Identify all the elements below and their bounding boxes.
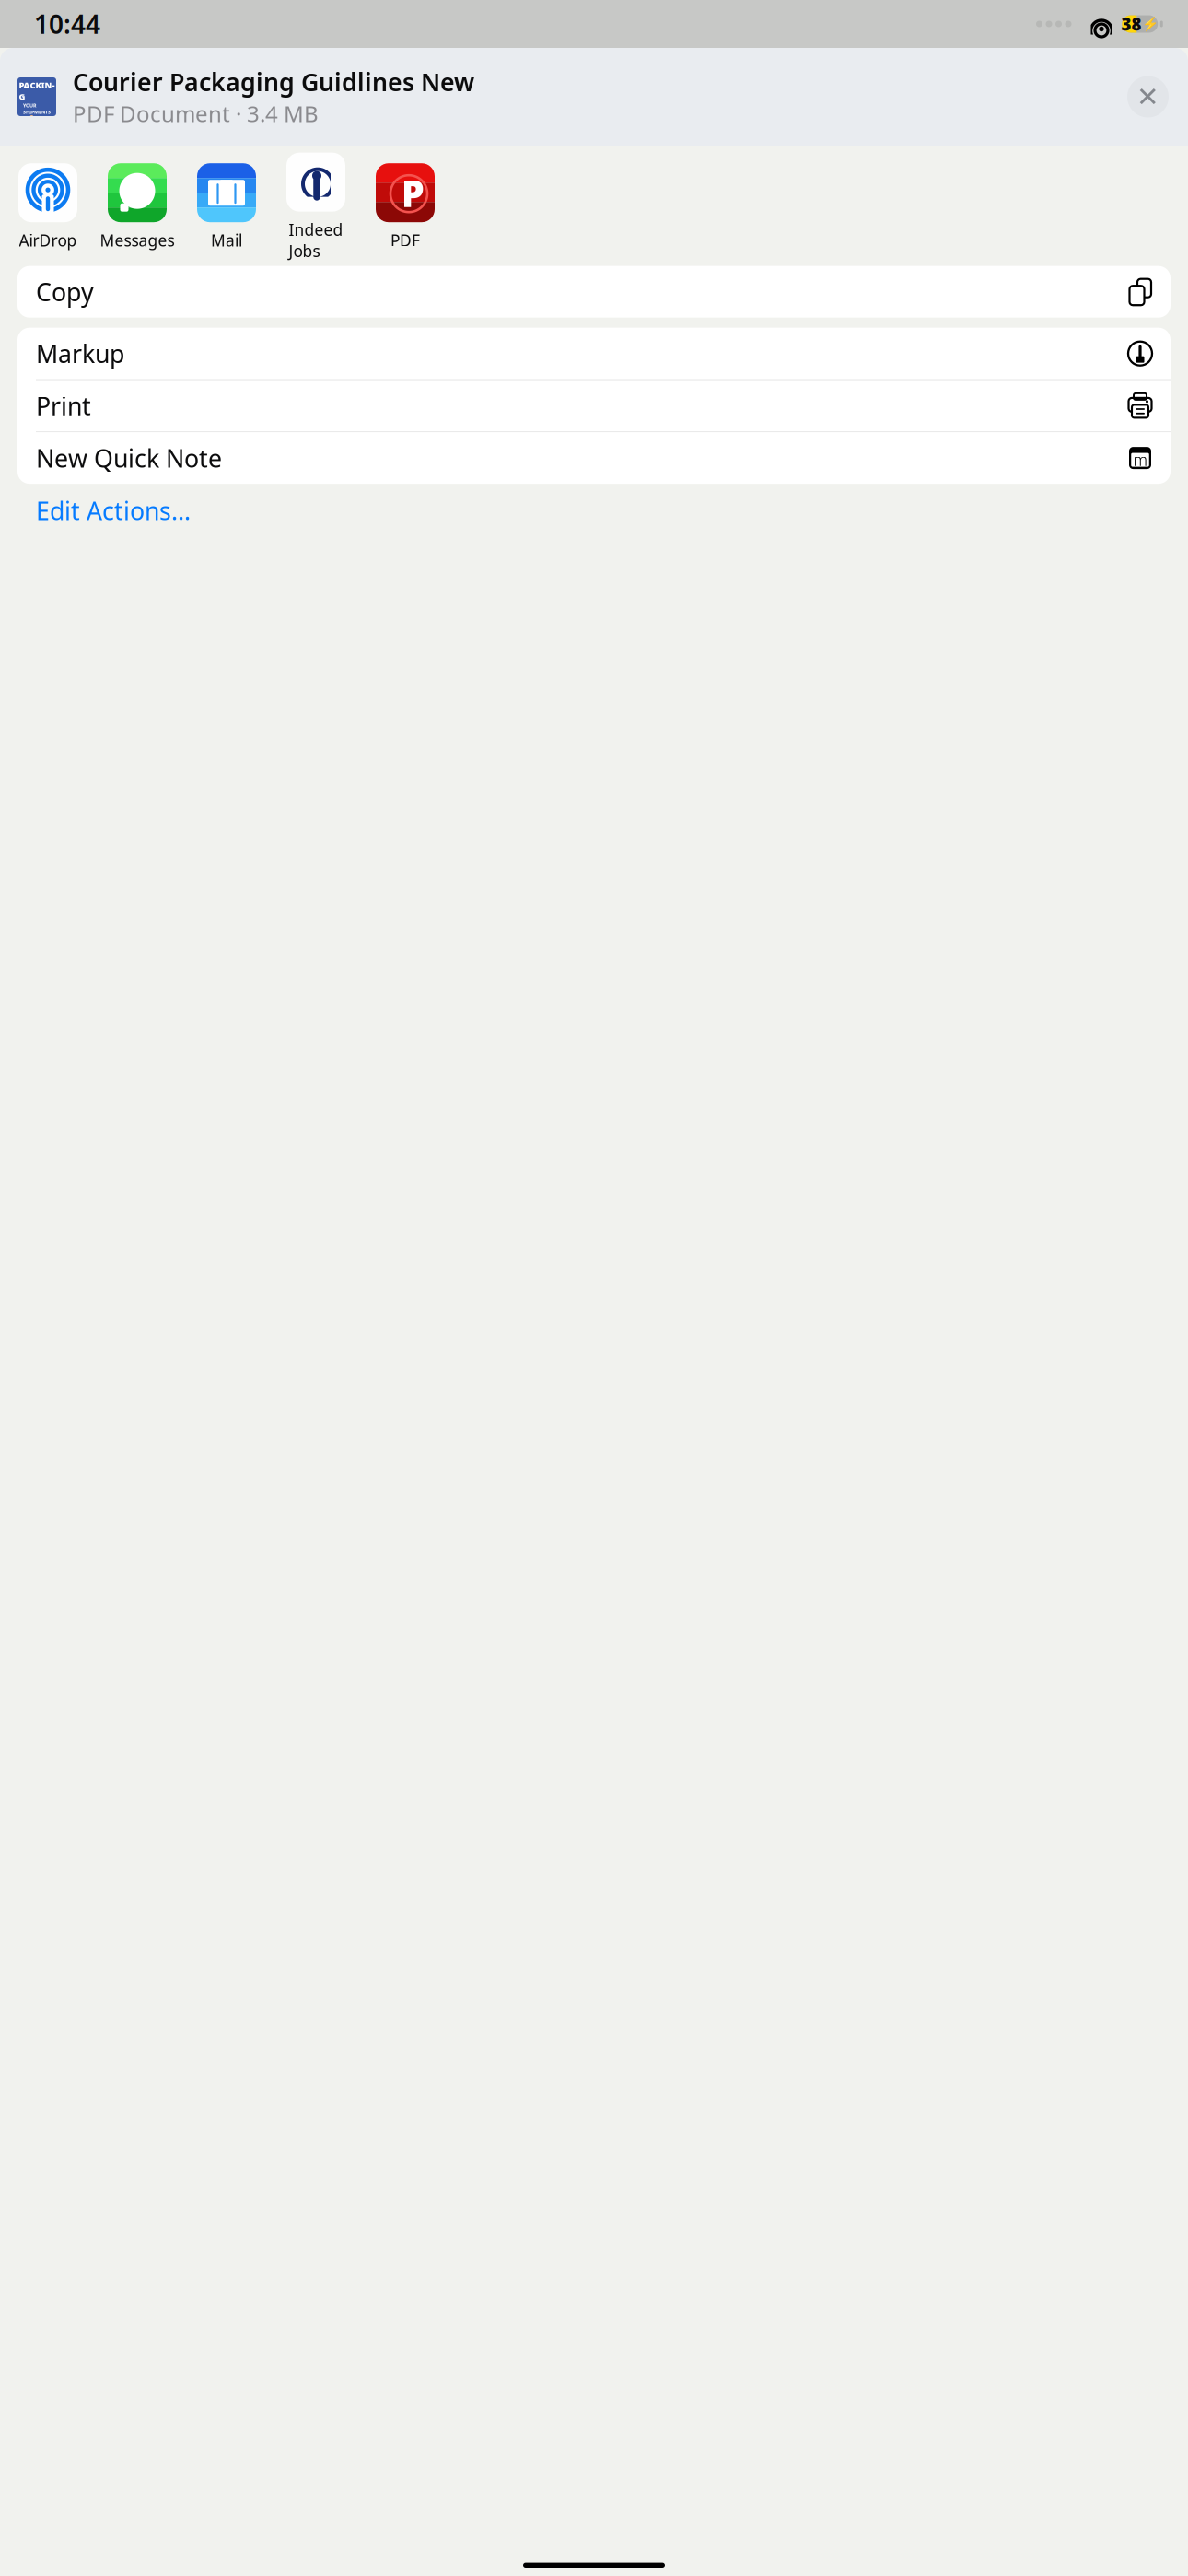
- button[interactable]: Copy: [17, 266, 1171, 318]
- staticText: Messages: [100, 230, 175, 251]
- staticText: Indeed Jobs: [289, 219, 343, 261]
- button[interactable]: Markup: [17, 328, 1171, 379]
- staticText: m: [1133, 449, 1147, 470]
- button[interactable]: P: [361, 163, 449, 251]
- button[interactable]: Print: [17, 380, 1171, 432]
- staticText: ⚡: [1142, 16, 1159, 32]
- staticText: Print: [36, 389, 91, 422]
- staticText: PDF: [390, 230, 420, 251]
- staticText: YOUR SHIPMENTS: [23, 102, 51, 115]
- button[interactable]: Indeed Jobs: [272, 153, 360, 261]
- button[interactable]: New Quick Note: [17, 432, 1171, 484]
- button[interactable]: Close: [1127, 76, 1169, 117]
- staticText: ✕: [1136, 81, 1159, 112]
- staticText: Courier Packaging Guidlines New: [73, 65, 474, 98]
- staticText: New Quick Note: [36, 442, 222, 474]
- button[interactable]: AirDrop: [4, 163, 92, 251]
- button[interactable]: Messages: [93, 163, 181, 251]
- button[interactable]: Edit Actions...: [17, 484, 1171, 537]
- staticText: Copy: [36, 275, 94, 308]
- staticText: 38: [1121, 13, 1141, 35]
- staticText: Edit Actions...: [36, 494, 191, 527]
- staticText: PACKING: [19, 79, 55, 102]
- staticText: P: [401, 168, 424, 217]
- button[interactable]: Mail: [182, 163, 271, 251]
- staticText: 10:44: [34, 7, 100, 41]
- staticText: Mail: [211, 230, 242, 251]
- staticText: Markup: [36, 337, 124, 370]
- staticText: PDF Document · 3.4 MB: [73, 99, 319, 128]
- staticText: AirDrop: [19, 230, 77, 251]
